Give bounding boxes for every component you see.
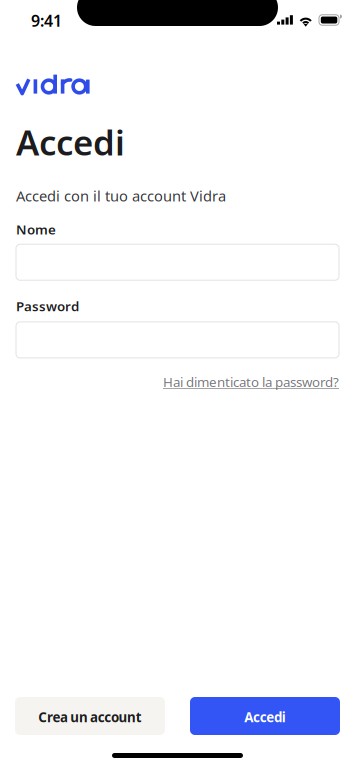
staticText: Hai dimenticato la password? <box>163 373 339 391</box>
button[interactable]: Crea un account <box>15 697 165 735</box>
staticText: Accedi con il tuo account Vidra <box>16 186 226 205</box>
staticText: Nome <box>16 220 56 238</box>
staticText: 9:41 <box>31 10 62 31</box>
button[interactable]: Hai dimenticato la password? <box>163 373 339 391</box>
button[interactable]: Nome <box>16 244 339 280</box>
staticText: Password <box>16 297 79 315</box>
staticText: Accedi <box>244 708 286 726</box>
button[interactable]: Accedi <box>190 697 340 735</box>
button[interactable]: Password <box>16 322 339 358</box>
staticText: Crea un account <box>38 708 142 726</box>
staticText: Accedi <box>16 119 125 165</box>
